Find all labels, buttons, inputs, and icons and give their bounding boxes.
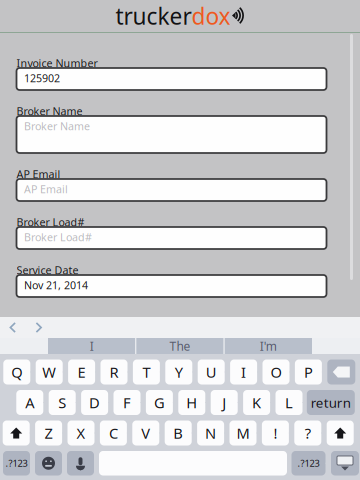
staticText: I'm xyxy=(260,338,277,354)
staticText: 125902 xyxy=(24,71,60,85)
button[interactable]: K xyxy=(243,390,270,415)
button[interactable]: C xyxy=(100,420,127,445)
button[interactable]: M xyxy=(229,420,256,445)
button[interactable]: The xyxy=(136,338,224,354)
button[interactable]: P xyxy=(295,359,322,384)
staticText: Service Date xyxy=(16,263,78,277)
button[interactable]: Broker Load# xyxy=(16,227,326,249)
staticText: X xyxy=(76,423,85,443)
button[interactable]: S xyxy=(49,390,76,415)
button[interactable]: Q xyxy=(3,359,30,384)
staticText: AP Email xyxy=(24,182,68,196)
button[interactable]: ? xyxy=(294,420,321,445)
button[interactable]: J xyxy=(211,390,238,415)
button[interactable]: B xyxy=(165,420,192,445)
staticText: Invoice Number xyxy=(16,56,97,70)
button[interactable]: X xyxy=(67,420,94,445)
button[interactable]: N xyxy=(197,420,224,445)
staticText: ! xyxy=(273,423,277,443)
staticText: O xyxy=(270,362,281,382)
staticText: Broker Load# xyxy=(24,230,92,244)
button[interactable]: Numbers xyxy=(291,451,325,475)
button[interactable]: Previous field xyxy=(0,317,26,338)
staticText: H xyxy=(186,393,197,412)
staticText: M xyxy=(236,423,249,443)
staticText: C xyxy=(109,423,118,443)
staticText: Z xyxy=(45,423,53,443)
staticText: N xyxy=(205,423,216,443)
staticText: trucker xyxy=(115,1,191,31)
staticText: R xyxy=(109,362,118,382)
staticText: J xyxy=(222,393,226,412)
button[interactable]: Shift xyxy=(3,420,30,445)
button[interactable]: T xyxy=(133,359,160,384)
button[interactable]: Hide keyboard xyxy=(331,451,359,475)
button[interactable]: Emoji xyxy=(35,451,62,475)
button[interactable]: A xyxy=(16,390,43,415)
staticText: Y xyxy=(175,362,183,382)
staticText: E xyxy=(78,362,86,382)
staticText: K xyxy=(252,393,261,412)
button[interactable]: space xyxy=(99,451,287,475)
button[interactable]: Numbers xyxy=(3,451,30,475)
button[interactable]: Nov 21, 2014 xyxy=(16,275,326,297)
staticText: Nov 21, 2014 xyxy=(24,278,88,292)
button[interactable]: I xyxy=(48,338,135,354)
staticText: Broker Load# xyxy=(16,215,84,229)
staticText: return xyxy=(311,394,351,411)
button[interactable]: U xyxy=(198,359,225,384)
button[interactable]: AP Email xyxy=(16,179,326,201)
staticText: L xyxy=(285,393,293,412)
staticText: .?123 xyxy=(5,457,27,469)
button[interactable]: Broker Name xyxy=(16,116,326,153)
staticText: D xyxy=(89,393,100,412)
staticText: Broker Name xyxy=(24,119,90,133)
staticText: T xyxy=(142,362,150,382)
button[interactable]: F xyxy=(113,390,140,415)
button[interactable]: I'm xyxy=(225,338,312,354)
staticText: AP Email xyxy=(16,167,60,181)
button[interactable]: H xyxy=(178,390,205,415)
button[interactable]: L xyxy=(275,390,302,415)
staticText: P xyxy=(304,362,313,382)
staticText: Q xyxy=(11,362,22,382)
button[interactable]: Shift xyxy=(327,420,354,445)
button[interactable]: Next field xyxy=(26,317,52,338)
button[interactable]: W xyxy=(36,359,63,384)
staticText: F xyxy=(123,393,131,412)
staticText: V xyxy=(141,423,150,443)
staticText: dox xyxy=(191,1,230,31)
staticText: B xyxy=(173,423,183,443)
staticText: The xyxy=(169,338,190,354)
button[interactable]: D xyxy=(81,390,108,415)
button[interactable]: Z xyxy=(35,420,62,445)
button[interactable]: Y xyxy=(165,359,192,384)
staticText: A xyxy=(25,393,34,412)
staticText: G xyxy=(154,393,165,412)
button[interactable]: O xyxy=(262,359,289,384)
button[interactable]: I xyxy=(230,359,257,384)
staticText: Broker Name xyxy=(16,104,82,118)
button[interactable]: Dictation xyxy=(67,451,94,475)
staticText: S xyxy=(58,393,66,412)
button[interactable]: return xyxy=(307,390,355,415)
staticText: I xyxy=(241,362,246,382)
button[interactable]: Delete xyxy=(327,359,355,384)
staticText: U xyxy=(206,362,217,382)
button[interactable]: R xyxy=(100,359,127,384)
button[interactable]: V xyxy=(132,420,159,445)
button[interactable]: E xyxy=(68,359,95,384)
button[interactable]: G xyxy=(146,390,173,415)
button[interactable]: 125902 xyxy=(16,68,326,90)
staticText: W xyxy=(42,362,56,382)
button[interactable]: ! xyxy=(262,420,289,445)
staticText: ? xyxy=(305,423,311,443)
staticText: .?123 xyxy=(297,457,319,469)
staticText: I xyxy=(90,338,94,354)
